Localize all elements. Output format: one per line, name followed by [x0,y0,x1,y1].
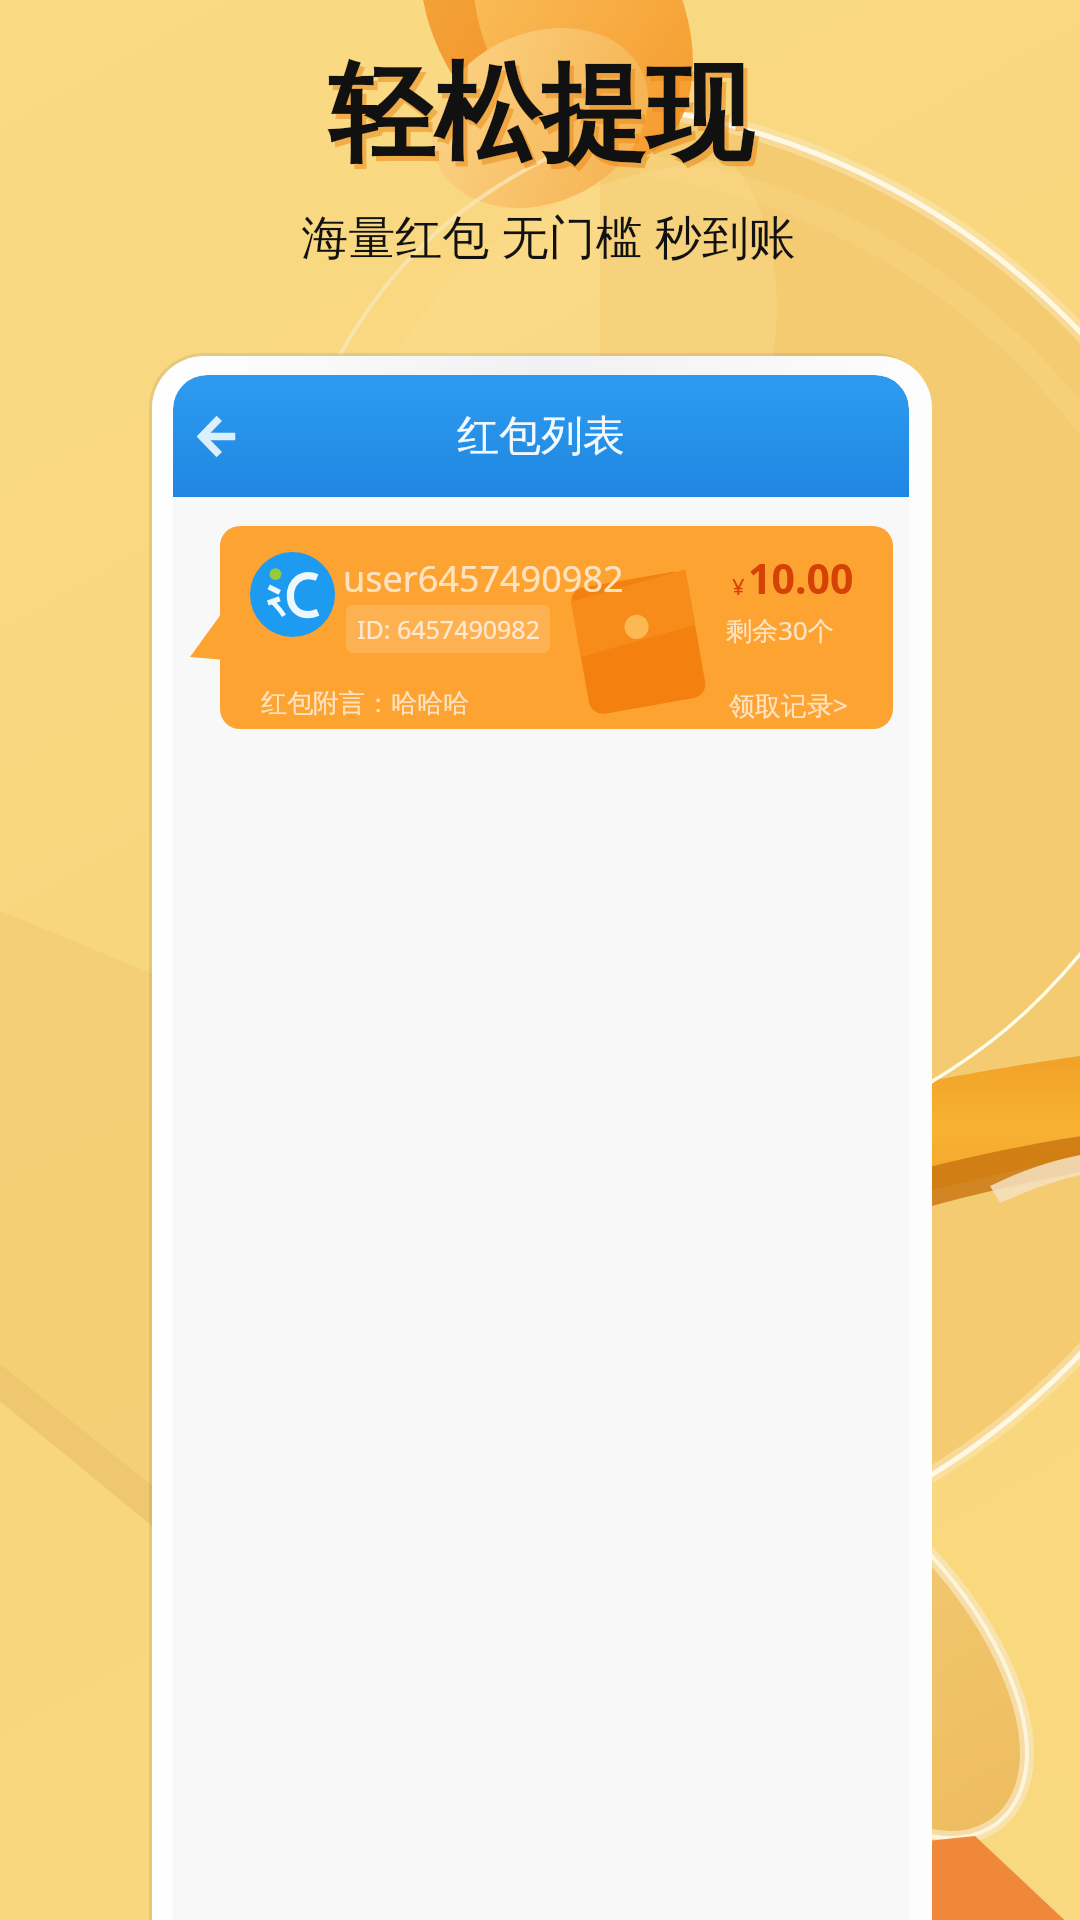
staticText: 轻松提现 [328,48,752,182]
staticText: 剩余30个 [726,612,834,648]
button[interactable]: 领取记录> [721,679,856,729]
staticText: 红包列表 [457,410,625,463]
button[interactable]: Back [179,398,255,474]
staticText: 轻松提现 [332,53,756,187]
staticText: ¥ [732,571,745,601]
staticText: 海量红包 无门槛 秒到账 [301,204,796,268]
staticText: 领取记录> [729,687,848,723]
staticText: 红包附言：哈哈哈 [261,687,469,720]
button[interactable]: user6457490982 [220,526,893,729]
staticText: 10.00 [748,550,854,606]
staticText: ID: 6457490982 [357,612,540,646]
staticText: user6457490982 [343,554,624,603]
